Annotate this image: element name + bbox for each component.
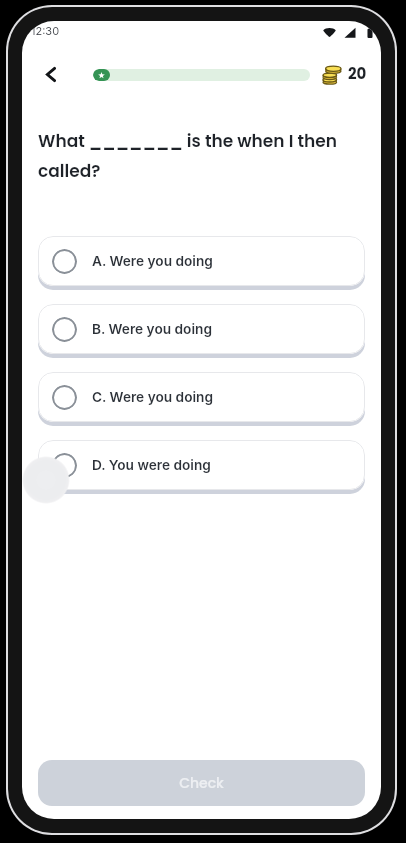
staticText: B. Were you doing bbox=[92, 321, 212, 338]
staticText: A. Were you doing bbox=[92, 253, 213, 270]
button[interactable]: Check bbox=[38, 760, 365, 806]
button[interactable]: D. You were doing bbox=[38, 440, 365, 490]
staticText: What _______ is the when I then called? bbox=[38, 129, 365, 183]
button[interactable]: A. Were you doing bbox=[38, 236, 365, 286]
button[interactable]: Back bbox=[34, 57, 68, 91]
staticText: D. You were doing bbox=[92, 457, 211, 474]
button[interactable]: C. Were you doing bbox=[38, 372, 365, 422]
staticText: 20 bbox=[348, 63, 367, 84]
button[interactable]: B. Were you doing bbox=[38, 304, 365, 354]
staticText: C. Were you doing bbox=[92, 389, 214, 406]
button[interactable]: Coins: 20 bbox=[321, 62, 367, 84]
staticText: 12:30 bbox=[31, 24, 60, 37]
staticText: Check bbox=[179, 773, 224, 793]
